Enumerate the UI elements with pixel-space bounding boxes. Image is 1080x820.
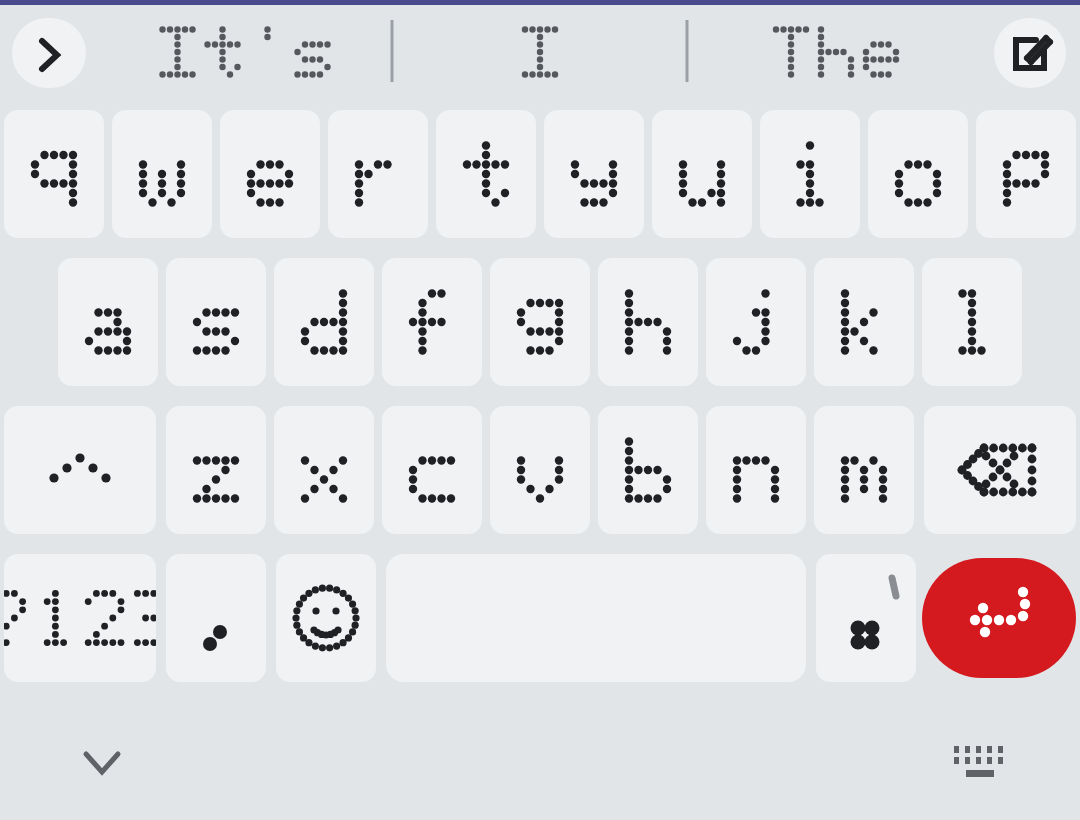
- button[interactable]: Emoji: [276, 554, 376, 682]
- button[interactable]: Compose: [994, 18, 1066, 88]
- button[interactable]: [598, 406, 698, 534]
- button[interactable]: Hide keyboard: [60, 720, 144, 804]
- button[interactable]: [976, 110, 1076, 238]
- button[interactable]: Switch keyboard: [938, 720, 1022, 804]
- button[interactable]: [220, 110, 320, 238]
- button[interactable]: [166, 406, 266, 534]
- button[interactable]: [4, 554, 156, 682]
- button[interactable]: Shift: [4, 406, 156, 534]
- button[interactable]: [274, 406, 374, 534]
- button[interactable]: [328, 110, 428, 238]
- button[interactable]: [544, 110, 644, 238]
- button[interactable]: Comma: [166, 554, 266, 682]
- button[interactable]: [4, 110, 104, 238]
- button[interactable]: [382, 258, 482, 386]
- button[interactable]: [450, 12, 630, 92]
- button[interactable]: [490, 406, 590, 534]
- button[interactable]: [490, 258, 590, 386]
- button[interactable]: [155, 12, 335, 92]
- button[interactable]: Enter: [922, 558, 1076, 678]
- button[interactable]: Period: [816, 554, 916, 682]
- button[interactable]: [746, 12, 926, 92]
- button[interactable]: [652, 110, 752, 238]
- button[interactable]: [112, 110, 212, 238]
- button[interactable]: [814, 406, 914, 534]
- button[interactable]: [760, 110, 860, 238]
- button[interactable]: Expand toolbar: [12, 18, 86, 88]
- button[interactable]: [58, 258, 158, 386]
- button[interactable]: [166, 258, 266, 386]
- button[interactable]: [382, 406, 482, 534]
- button[interactable]: [598, 258, 698, 386]
- button[interactable]: [706, 258, 806, 386]
- button[interactable]: Backspace: [924, 406, 1076, 534]
- button[interactable]: [706, 406, 806, 534]
- button[interactable]: [922, 258, 1022, 386]
- button[interactable]: [868, 110, 968, 238]
- button[interactable]: [436, 110, 536, 238]
- button[interactable]: [814, 258, 914, 386]
- button[interactable]: [274, 258, 374, 386]
